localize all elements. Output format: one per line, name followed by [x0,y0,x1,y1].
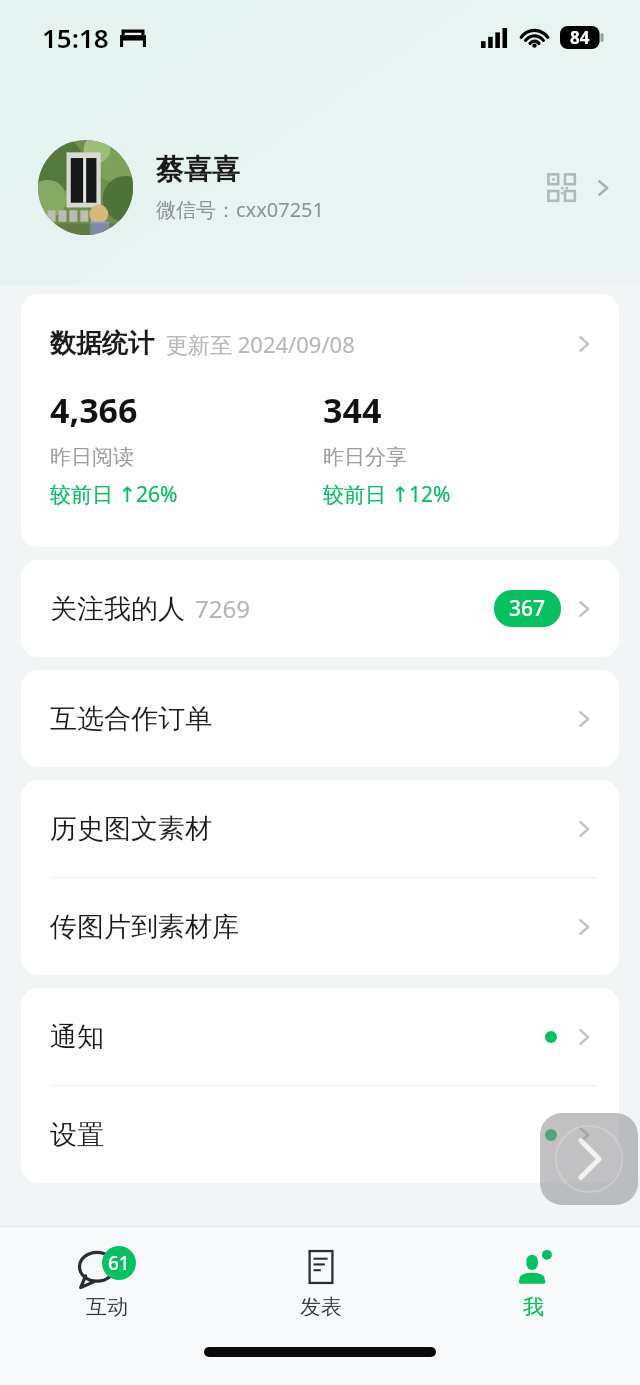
staticText: 传图片到素材库 [50,910,239,944]
staticText: 较前日 ↑12% [323,480,451,509]
staticText: 7269 [195,592,250,625]
button[interactable]: 关注我的人 [21,560,619,657]
staticText: 蔡喜喜 [156,152,240,187]
staticText: 344 [323,387,382,433]
staticText: 昨日阅读 [50,444,134,470]
button[interactable]: 设置 [21,1086,619,1183]
staticText: 通知 [50,1020,104,1054]
staticText: 发表 [300,1294,342,1320]
button[interactable]: 互选合作订单 [21,670,619,767]
staticText: 15:18 [42,20,109,55]
staticText: 关注我的人 [50,592,185,626]
button[interactable]: 通知 [21,988,619,1085]
button[interactable]: 我 [427,1240,640,1326]
button[interactable]: 61 [0,1240,214,1326]
staticText: 昨日分享 [323,444,407,470]
staticText: 设置 [50,1118,104,1152]
button[interactable]: Profile photo [38,140,133,235]
staticText: 数据统计 [50,327,154,360]
staticText: 较前日 ↑26% [50,480,178,509]
staticText: 微信号：cxx07251 [156,196,324,223]
staticText: 互选合作订单 [50,702,212,736]
staticText: 历史图文素材 [50,812,212,846]
button[interactable]: 数据统计 [21,294,619,547]
button[interactable]: 发表 [214,1240,427,1326]
staticText: 84 [570,26,590,49]
button[interactable]: 传图片到素材库 [21,878,619,975]
staticText: 4,366 [50,387,138,433]
staticText: 我 [523,1294,544,1320]
staticText: 互动 [86,1294,128,1320]
button[interactable]: Profile photo [0,140,640,235]
button[interactable]: 历史图文素材 [21,780,619,877]
staticText: 更新至 2024/09/08 [166,329,355,359]
button[interactable]: AssistiveTouch [540,1113,638,1205]
staticText: 367 [509,594,546,623]
button[interactable]: My QR code [540,166,584,210]
staticText: 61 [108,1250,130,1276]
